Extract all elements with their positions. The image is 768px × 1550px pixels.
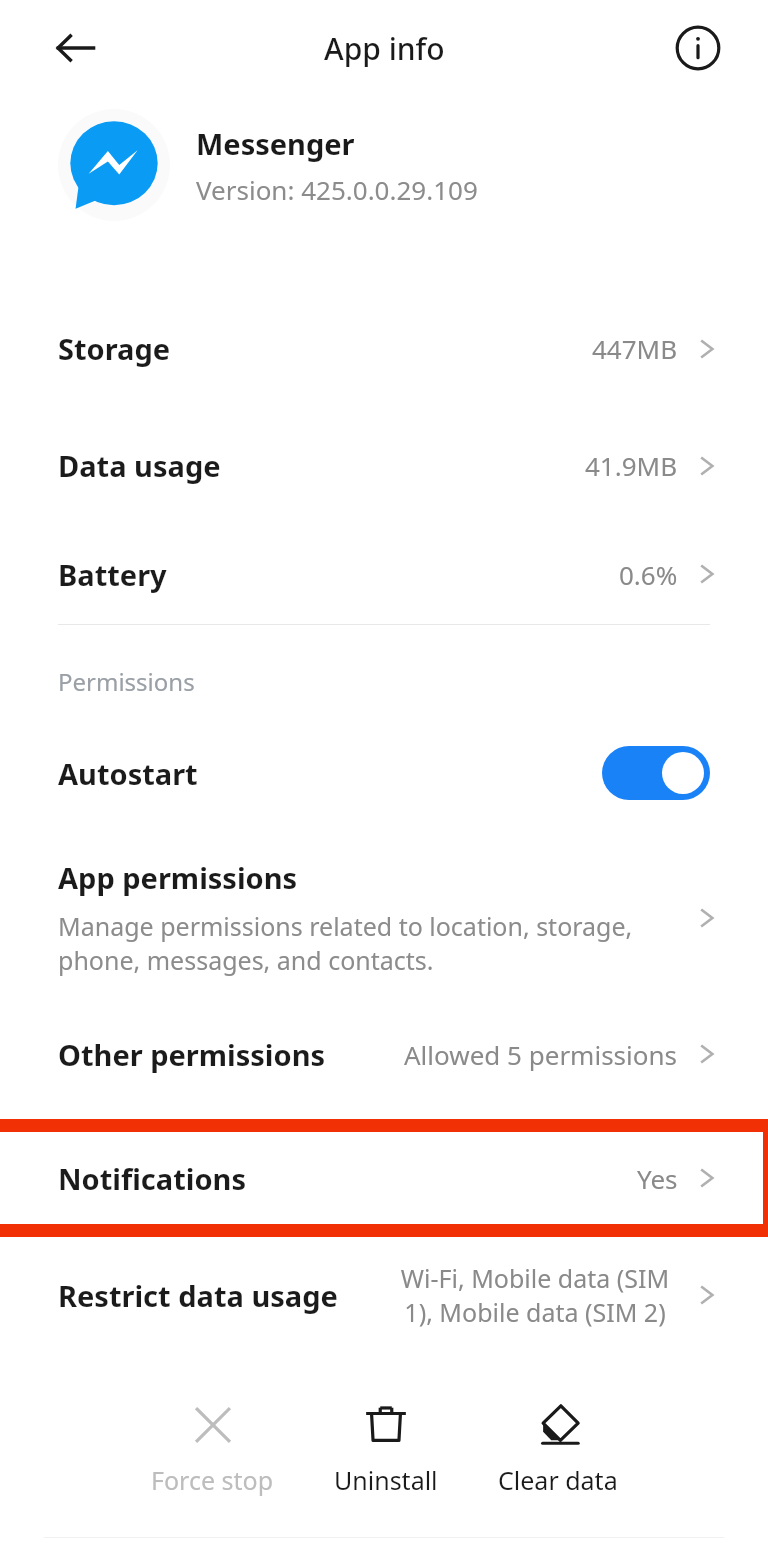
button[interactable]: Autostart — [0, 730, 768, 816]
staticText: Other permissions — [58, 1035, 326, 1074]
staticText: Manage permissions related to location, … — [58, 909, 680, 977]
button[interactable]: Restrict data usage — [0, 1261, 768, 1329]
button[interactable]: Force stop — [143, 1397, 282, 1501]
staticText: Autostart — [58, 754, 198, 793]
staticText: Version: 425.0.0.29.109 — [196, 172, 478, 207]
staticText: App info — [324, 28, 445, 69]
button[interactable]: Data usage — [0, 407, 768, 524]
button[interactable]: Notifications — [0, 1132, 763, 1224]
button[interactable]: Messenger — [0, 96, 768, 234]
button[interactable]: App details — [664, 14, 732, 82]
staticText: App permissions — [58, 858, 298, 897]
staticText: Battery — [58, 555, 167, 594]
button[interactable]: Battery — [0, 524, 768, 624]
button[interactable]: Storage — [0, 290, 768, 407]
staticText: Force stop — [151, 1463, 274, 1497]
staticText: Permissions — [58, 665, 195, 698]
button[interactable]: App permissions — [0, 858, 768, 977]
staticText: Yes — [637, 1161, 678, 1196]
staticText: 447MB — [592, 331, 678, 366]
staticText: Allowed 5 permissions — [404, 1037, 678, 1072]
staticText: Uninstall — [334, 1463, 438, 1497]
staticText: Wi-Fi, Mobile data (SIM 1), Mobile data … — [390, 1261, 680, 1329]
button[interactable]: Back — [40, 12, 112, 84]
button[interactable]: Other permissions — [0, 1023, 768, 1085]
staticText: Data usage — [58, 446, 221, 485]
staticText: Storage — [58, 329, 171, 368]
staticText: 0.6% — [619, 557, 678, 592]
button[interactable]: Uninstall — [326, 1397, 446, 1501]
staticText: Clear data — [498, 1463, 618, 1497]
staticText: Notifications — [58, 1159, 246, 1198]
staticText: 41.9MB — [585, 448, 678, 483]
button[interactable]: Clear data — [490, 1397, 626, 1501]
staticText: Restrict data usage — [58, 1276, 338, 1315]
staticText: Messenger — [196, 124, 355, 163]
